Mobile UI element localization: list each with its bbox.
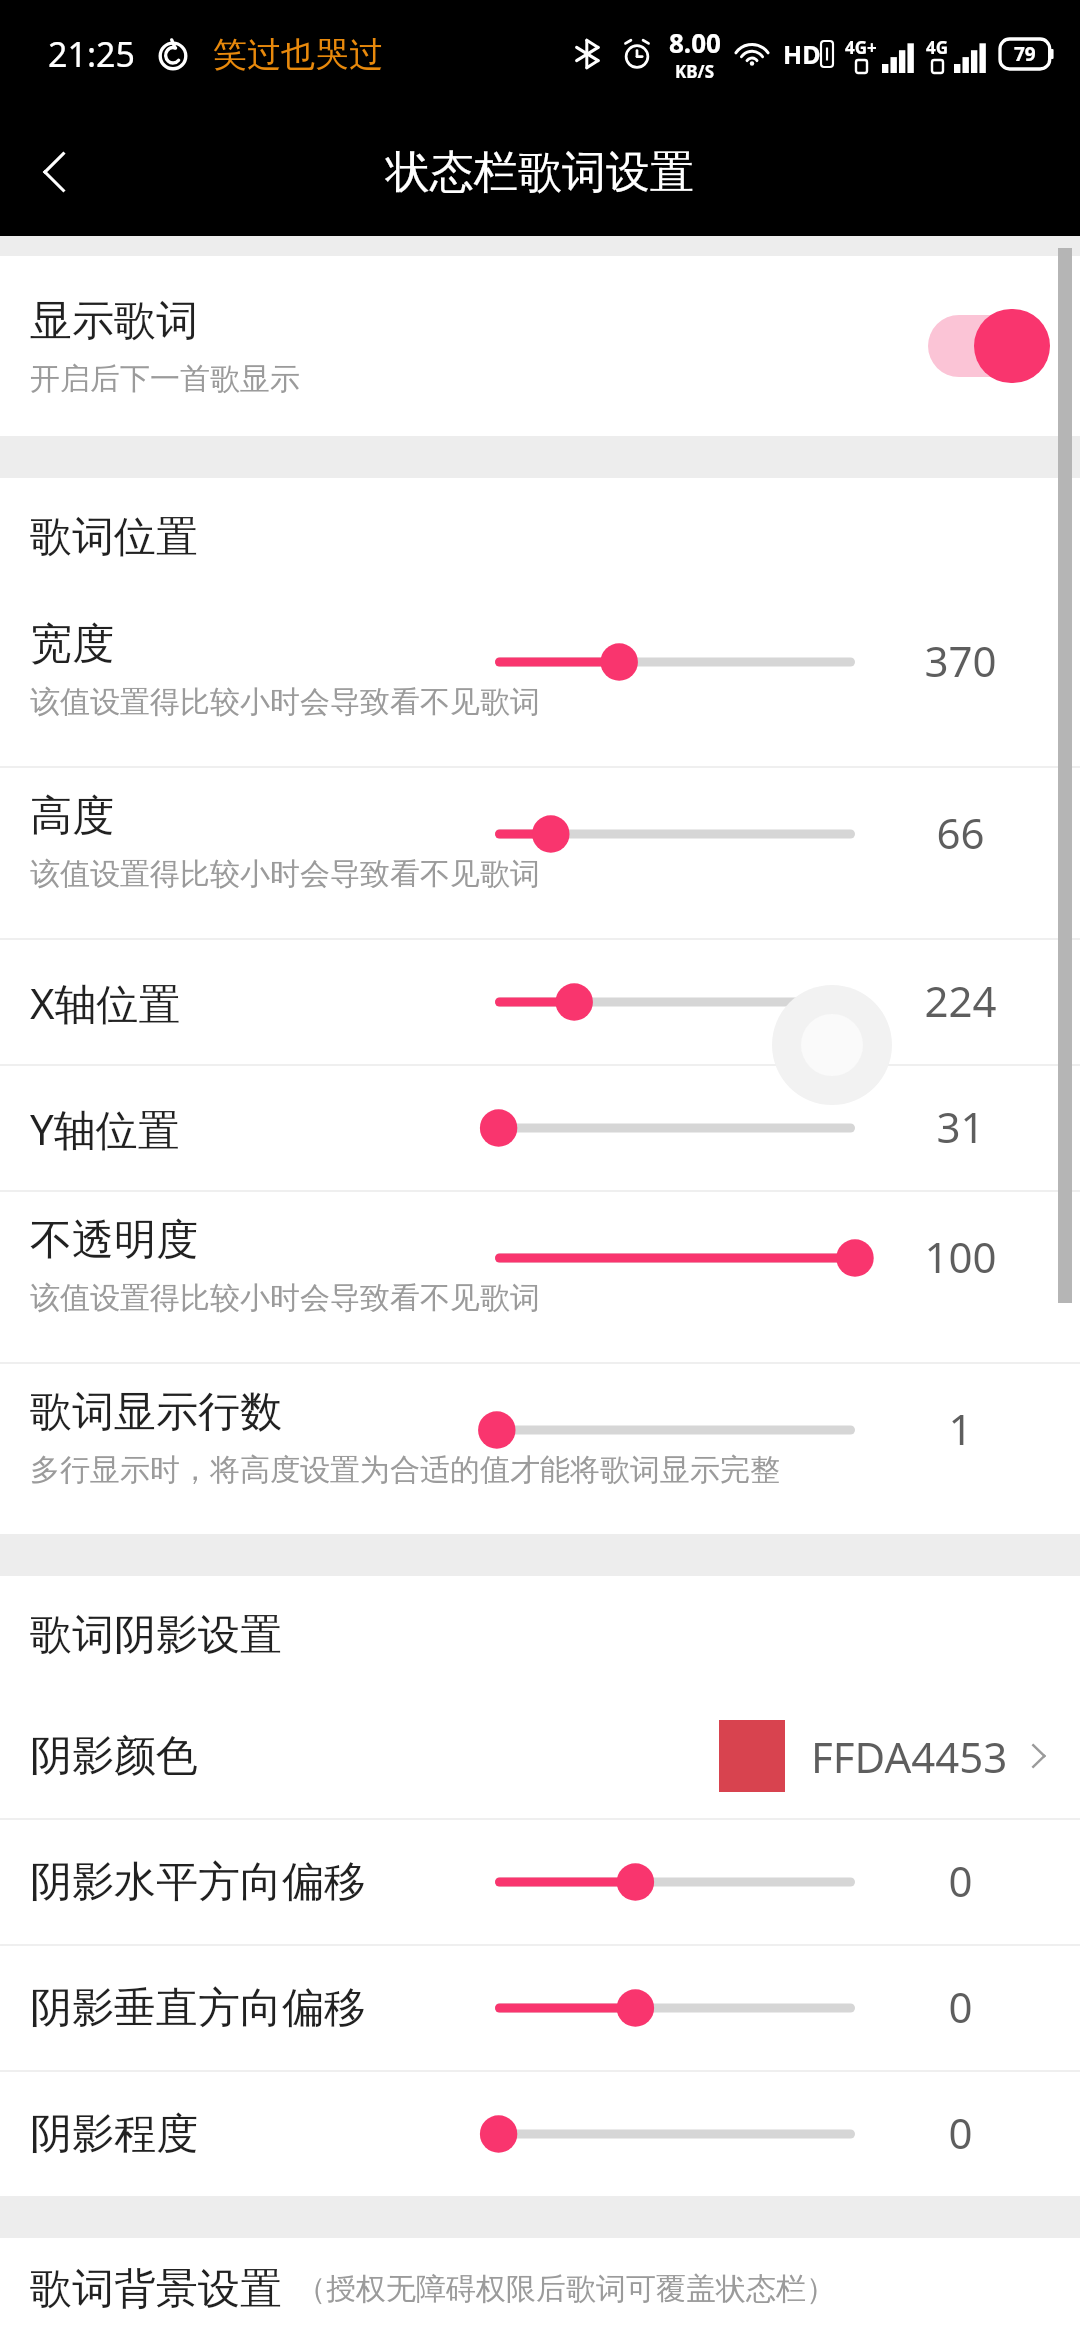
staticText: 阴影颜色 xyxy=(30,1730,198,1783)
staticText: 4G xyxy=(926,36,949,59)
staticText: 阴影水平方向偏移 xyxy=(30,1856,366,1909)
staticText: 该值设置得比较小时会导致看不见歌词 xyxy=(30,855,540,893)
button[interactable]: 高度 xyxy=(0,768,1080,938)
staticText: 79 xyxy=(1014,41,1036,67)
staticText: 状态栏歌词设置 xyxy=(386,145,694,200)
staticText: 224 xyxy=(924,972,997,1029)
staticText: 66 xyxy=(936,804,985,861)
button[interactable]: 阴影水平方向偏移 xyxy=(0,1820,1080,1944)
button[interactable]: 宽度 xyxy=(0,596,1080,766)
staticText: 4G+ xyxy=(845,36,877,59)
staticText: X轴位置 xyxy=(30,974,181,1031)
staticText: 该值设置得比较小时会导致看不见歌词 xyxy=(30,1279,540,1317)
button[interactable]: 显示歌词 xyxy=(0,256,1080,436)
staticText: HD xyxy=(783,37,821,71)
staticText: FFDA4453 xyxy=(811,1728,1008,1785)
staticText: 宽度 xyxy=(30,618,114,671)
staticText: 不透明度 xyxy=(30,1214,198,1267)
staticText: 0 xyxy=(948,1978,973,2035)
staticText: 21:25 xyxy=(48,31,135,77)
staticText: 歌词位置 xyxy=(30,511,198,564)
staticText: 370 xyxy=(924,632,997,689)
staticText: 100 xyxy=(924,1228,997,1285)
staticText: 阴影程度 xyxy=(30,2108,198,2161)
button[interactable]: X轴位置 xyxy=(0,940,1080,1064)
button[interactable]: 不透明度 xyxy=(0,1192,1080,1362)
button[interactable]: Back xyxy=(0,116,112,228)
staticText: 31 xyxy=(936,1098,985,1155)
staticText: KB/S xyxy=(675,60,715,83)
staticText: Y轴位置 xyxy=(30,1100,180,1157)
staticText: 高度 xyxy=(30,790,114,843)
button[interactable]: 阴影颜色 xyxy=(0,1694,1080,1818)
button[interactable]: 显示歌词开关 xyxy=(922,309,1050,383)
staticText: 显示歌词 xyxy=(30,295,198,348)
staticText: （授权无障碍权限后歌词可覆盖状态栏） xyxy=(296,2270,836,2308)
staticText: 阴影垂直方向偏移 xyxy=(30,1982,366,2035)
button[interactable]: 阴影程度 xyxy=(0,2072,1080,2196)
button[interactable]: Floating assistant xyxy=(772,985,892,1105)
staticText: 该值设置得比较小时会导致看不见歌词 xyxy=(30,683,540,721)
staticText: 歌词背景设置 xyxy=(30,2263,282,2316)
button[interactable]: 歌词显示行数 xyxy=(0,1364,1080,1534)
staticText: 开启后下一首歌显示 xyxy=(30,360,300,398)
button[interactable]: 阴影垂直方向偏移 xyxy=(0,1946,1080,2070)
staticText: 歌词显示行数 xyxy=(30,1386,282,1439)
staticText: 笑过也哭过 xyxy=(213,33,383,76)
button[interactable]: Y轴位置 xyxy=(0,1066,1080,1190)
staticText: 多行显示时，将高度设置为合适的值才能将歌词显示完整 xyxy=(30,1451,780,1489)
staticText: 0 xyxy=(948,2104,973,2161)
staticText: 歌词阴影设置 xyxy=(30,1609,282,1662)
staticText: 0 xyxy=(948,1852,973,1909)
staticText: 1 xyxy=(948,1400,973,1457)
staticText: 8.00 xyxy=(669,25,721,60)
